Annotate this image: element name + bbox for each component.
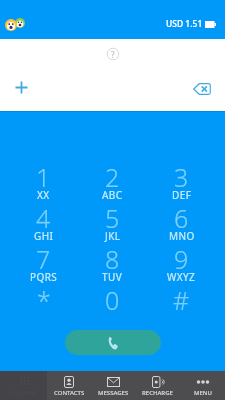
- button[interactable]: 3: [147, 160, 216, 201]
- button[interactable]: 5: [78, 201, 147, 242]
- staticText: 3: [174, 160, 189, 194]
- button[interactable]: 1: [9, 160, 78, 201]
- staticText: XX: [37, 188, 50, 202]
- button[interactable]: 9: [147, 242, 216, 283]
- staticText: 6: [174, 201, 189, 235]
- staticText: *: [37, 283, 51, 317]
- staticText: 5: [105, 201, 120, 235]
- staticText: 4: [36, 201, 51, 235]
- button[interactable]: 7: [9, 242, 78, 283]
- button[interactable]: Call: [65, 330, 161, 355]
- button[interactable]: MESSAGES: [91, 371, 135, 400]
- button[interactable]: *: [9, 283, 78, 324]
- staticText: JKL: [105, 229, 121, 243]
- staticText: 9: [174, 242, 189, 276]
- staticText: 2: [105, 160, 120, 194]
- staticText: ABC: [102, 188, 123, 202]
- staticText: MNO: [169, 229, 195, 243]
- button[interactable]: Backspace: [189, 76, 215, 102]
- staticText: 1: [36, 160, 51, 194]
- staticText: WXYZ: [167, 270, 196, 284]
- staticText: 7: [36, 242, 51, 276]
- staticText: 0: [105, 283, 120, 317]
- staticText: 8: [105, 242, 120, 276]
- staticText: PQRS: [30, 270, 58, 284]
- staticText: ?: [111, 49, 115, 60]
- staticText: DEF: [172, 188, 192, 202]
- button[interactable]: CONTACTS: [47, 371, 91, 400]
- button[interactable]: RECHARGE: [135, 371, 180, 400]
- staticText: MENU: [194, 389, 212, 397]
- staticText: USD 1.51: [166, 18, 203, 30]
- staticText: RECHARGE: [142, 389, 173, 397]
- button[interactable]: Add plus: [9, 75, 33, 99]
- staticText: MESSAGES: [98, 389, 129, 397]
- staticText: TUV: [102, 270, 123, 284]
- button[interactable]: #: [147, 283, 216, 324]
- button[interactable]: 2: [78, 160, 147, 201]
- staticText: CONTACTS: [54, 389, 85, 397]
- button[interactable]: 8: [78, 242, 147, 283]
- button[interactable]: 0: [78, 283, 147, 324]
- button[interactable]: MENU: [180, 371, 225, 400]
- button[interactable]: Help: [102, 43, 124, 65]
- button[interactable]: 4: [9, 201, 78, 242]
- button[interactable]: 6: [147, 201, 216, 242]
- staticText: GHI: [34, 229, 54, 243]
- staticText: #: [173, 283, 190, 317]
